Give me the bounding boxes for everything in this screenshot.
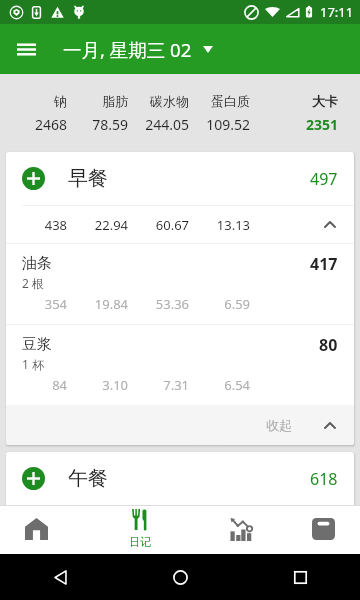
staticText: 497 bbox=[310, 168, 338, 190]
staticText: 13.13 bbox=[190, 216, 250, 234]
staticText: 油条 bbox=[22, 254, 52, 273]
staticText: 脂肪 bbox=[68, 93, 128, 109]
staticText: 22.94 bbox=[68, 216, 128, 234]
staticText: 60.67 bbox=[129, 216, 189, 234]
button[interactable]: 日记 bbox=[95, 505, 185, 554]
staticText: 一月, 星期三 02 bbox=[63, 37, 192, 62]
button[interactable]: 午餐 bbox=[6, 452, 354, 505]
staticText: 1 杯 bbox=[22, 356, 44, 372]
staticText: 109.52 bbox=[190, 115, 250, 134]
button[interactable]: Home bbox=[120, 554, 240, 600]
staticText: 蛋白质 bbox=[190, 93, 250, 109]
staticText: 417 bbox=[310, 253, 338, 275]
staticText: 7.31 bbox=[129, 376, 189, 394]
staticText: 2468 bbox=[7, 115, 67, 134]
button[interactable]: 收起 bbox=[6, 405, 354, 445]
staticText: 6.54 bbox=[190, 376, 250, 394]
staticText: 53.36 bbox=[129, 295, 189, 313]
staticText: 3.10 bbox=[68, 376, 128, 394]
button[interactable]: 油条 bbox=[6, 244, 354, 324]
staticText: 早餐 bbox=[68, 166, 108, 191]
staticText: 19.84 bbox=[68, 295, 128, 313]
staticText: 碳水物 bbox=[129, 93, 189, 109]
staticText: 午餐 bbox=[68, 466, 108, 491]
staticText: 大卡 bbox=[288, 93, 338, 109]
staticText: 80 bbox=[319, 334, 338, 356]
button[interactable]: 438 bbox=[6, 206, 354, 243]
button[interactable]: 豆浆 bbox=[6, 325, 354, 405]
staticText: 6.59 bbox=[190, 295, 250, 313]
button[interactable]: Reports bbox=[198, 505, 288, 554]
staticText: 244.05 bbox=[129, 115, 189, 134]
staticText: 84 bbox=[7, 376, 67, 394]
staticText: 438 bbox=[7, 216, 67, 234]
button[interactable]: Back bbox=[0, 554, 120, 600]
staticText: 618 bbox=[310, 468, 338, 490]
staticText: 354 bbox=[7, 295, 67, 313]
button[interactable]: 早餐 bbox=[6, 152, 354, 205]
staticText: 2 根 bbox=[22, 275, 44, 291]
staticText: 收起 bbox=[266, 417, 292, 433]
staticText: 78.59 bbox=[68, 115, 128, 134]
button[interactable]: 一月, 星期三 02 bbox=[63, 37, 213, 62]
staticText: 2351 bbox=[288, 115, 338, 134]
button[interactable]: Weight bbox=[288, 505, 360, 554]
staticText: 钠 bbox=[7, 93, 67, 109]
button[interactable]: Home bbox=[0, 505, 90, 554]
staticText: 17:11 bbox=[320, 3, 354, 21]
button[interactable]: Menu bbox=[3, 26, 49, 72]
button[interactable]: Recents bbox=[240, 554, 360, 600]
staticText: 日记 bbox=[129, 535, 151, 549]
staticText: 豆浆 bbox=[22, 335, 52, 354]
